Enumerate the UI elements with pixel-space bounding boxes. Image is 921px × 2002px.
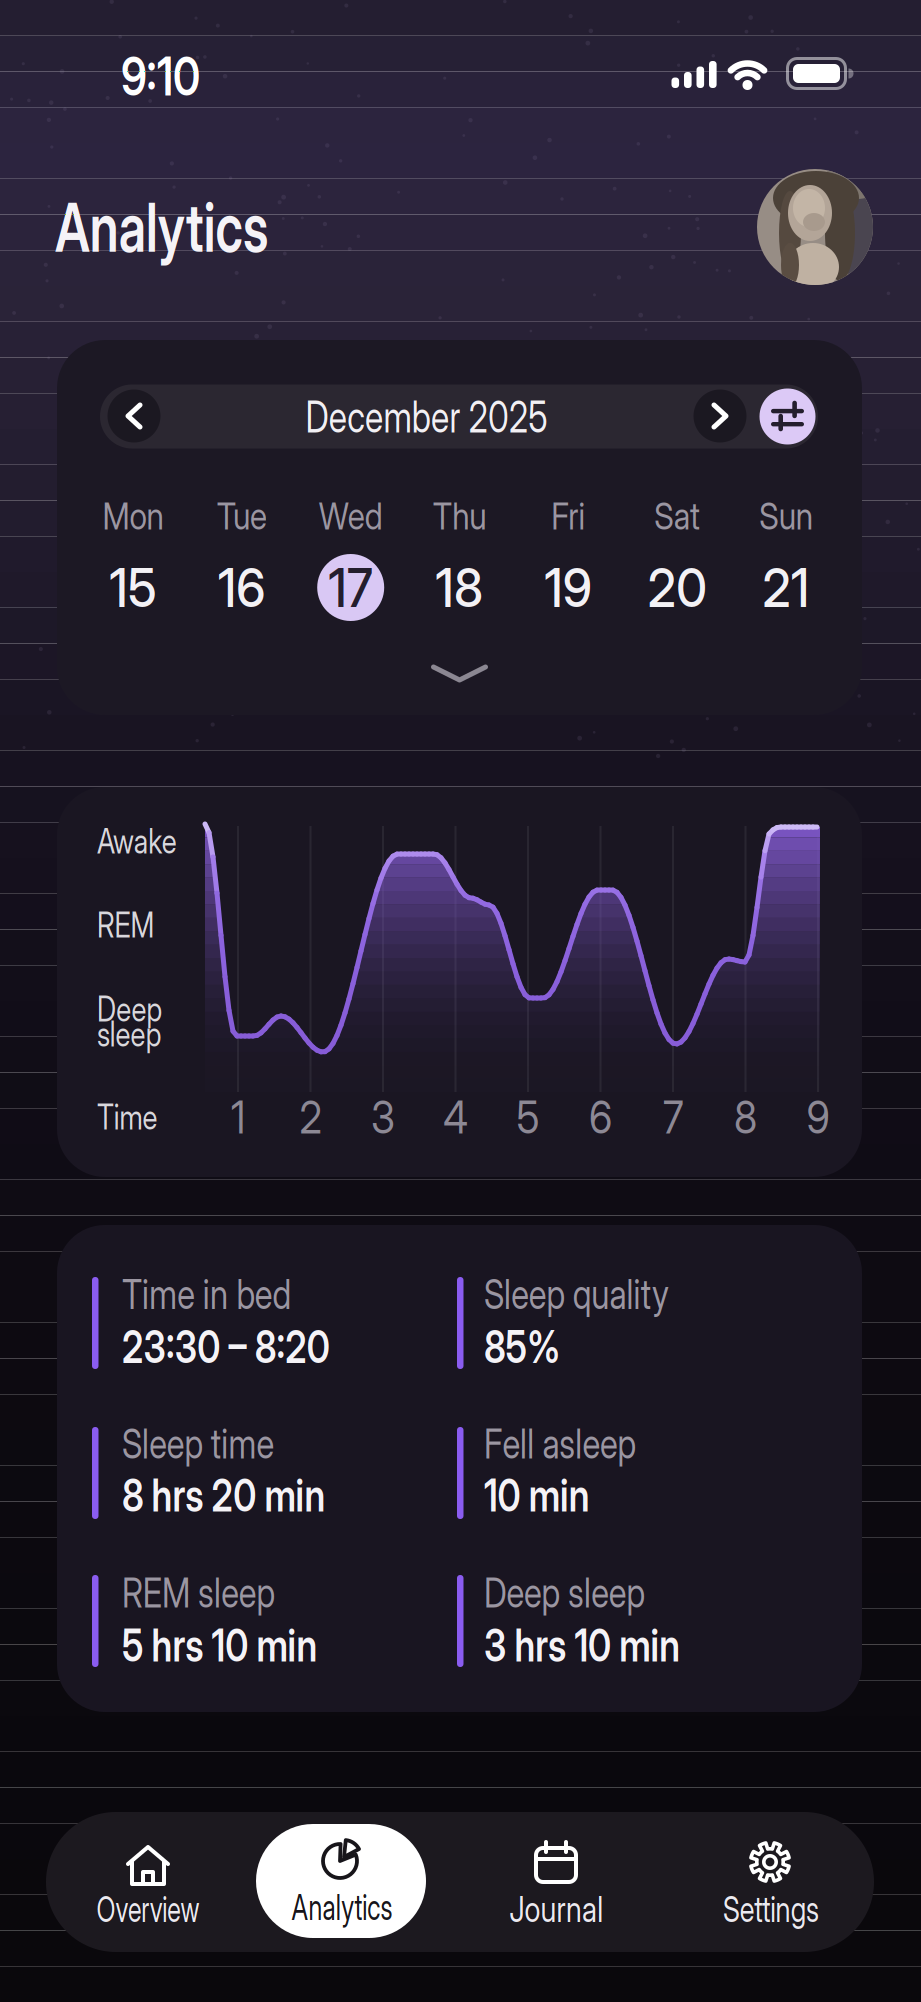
button[interactable]: Filter [759, 388, 815, 444]
button[interactable]: 20 [644, 554, 711, 621]
staticText: Sleep quality [484, 1270, 715, 1318]
staticText: 23:30 – 8:20 [122, 1320, 382, 1373]
staticText: 21 [760, 556, 811, 619]
button[interactable]: Profile [757, 169, 873, 285]
button[interactable]: 15 [99, 554, 166, 621]
button[interactable]: 19 [535, 554, 602, 621]
button[interactable]: Expand calendar [425, 662, 493, 686]
staticText: Analytics [55, 187, 343, 267]
staticText: Settings [708, 1888, 834, 1930]
staticText: Time [97, 1097, 173, 1137]
button[interactable]: Journal [466, 1824, 646, 1948]
staticText: 16 [216, 556, 268, 619]
staticText: 5 hrs 10 min [122, 1618, 366, 1672]
staticText: 2 [298, 1090, 323, 1144]
staticText: 85% [484, 1320, 579, 1373]
staticText: Overview [74, 1888, 221, 1930]
staticText: 9 [805, 1090, 831, 1144]
staticText: 6 [587, 1090, 613, 1144]
staticText: 4 [441, 1090, 469, 1144]
staticText: December 2025 [269, 390, 583, 442]
staticText: Sleep time [122, 1419, 312, 1468]
staticText: sleep [97, 1014, 178, 1054]
staticText: Sat [650, 494, 704, 538]
staticText: 20 [645, 556, 709, 619]
staticText: 10 min [484, 1468, 616, 1522]
staticText: Mon [97, 494, 169, 538]
staticText: 9:10 [111, 44, 210, 107]
staticText: 19 [542, 556, 594, 619]
staticText: Awake [97, 821, 197, 861]
staticText: 3 [369, 1090, 396, 1144]
staticText: 8 hrs 20 min [122, 1468, 376, 1522]
button[interactable]: Previous week [107, 389, 160, 442]
staticText: Analytics [270, 1886, 414, 1928]
staticText: Wed [313, 494, 388, 538]
staticText: 8 [732, 1090, 758, 1144]
staticText: Journal [497, 1888, 614, 1930]
button[interactable]: 16 [208, 554, 275, 621]
staticText: Time in bed [122, 1270, 333, 1318]
staticText: Sun [754, 494, 817, 538]
staticText: Tue [212, 494, 271, 538]
button[interactable]: 21 [752, 554, 819, 621]
staticText: 1 [230, 1090, 246, 1144]
staticText: 17 [327, 556, 375, 619]
button[interactable]: Next week [693, 389, 746, 442]
staticText: 3 hrs 10 min [484, 1618, 729, 1672]
staticText: Fell asleep [484, 1419, 674, 1468]
staticText: Deep [97, 989, 179, 1029]
button[interactable]: Overview [58, 1824, 238, 1948]
button[interactable]: 17 [317, 554, 384, 621]
staticText: 18 [433, 556, 485, 619]
staticText: Fri [548, 494, 588, 538]
staticText: Deep sleep [484, 1568, 685, 1617]
staticText: 5 [515, 1090, 541, 1144]
button[interactable]: 18 [426, 554, 493, 621]
staticText: Thu [428, 494, 491, 538]
staticText: 15 [107, 556, 158, 619]
staticText: 7 [661, 1090, 684, 1144]
staticText: REM [97, 905, 169, 945]
staticText: REM sleep [122, 1568, 313, 1617]
button[interactable]: Analytics [257, 1824, 427, 1948]
button[interactable]: Settings [681, 1824, 861, 1948]
